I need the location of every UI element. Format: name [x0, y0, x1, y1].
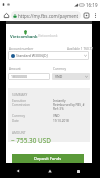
staticText: SUMMARY — [12, 93, 28, 97]
button[interactable]: Deposit Funds — [12, 154, 84, 163]
button[interactable]: VND — [52, 73, 90, 80]
staticText: Vietcombank — [38, 34, 58, 38]
staticText: 16:19 — [86, 2, 98, 8]
staticText: Commission — [12, 103, 30, 107]
button[interactable]: Recents — [72, 163, 85, 178]
staticText: https://my.fbs.com/payment — [18, 13, 79, 19]
staticText: Ref: 3% — [53, 107, 64, 111]
staticText: 18000000 — [11, 74, 28, 79]
staticText: VND — [53, 114, 60, 118]
button[interactable]: Standard W3006JDJ — [8, 51, 89, 60]
button[interactable]: Home — [43, 163, 56, 178]
staticText: VND — [55, 74, 63, 79]
staticText: Instantly — [53, 99, 66, 103]
button[interactable]: Tabs — [82, 11, 91, 20]
staticText: 19.10.2018 — [53, 119, 69, 123]
staticText: Date — [12, 119, 19, 123]
staticText: ~ 755.30 USD — [11, 136, 51, 145]
staticText: Account number — [9, 47, 34, 51]
button[interactable]: https://my.fbs.com/payment — [11, 11, 81, 20]
button[interactable]: Back — [11, 163, 24, 178]
staticText: Currency — [53, 67, 67, 71]
staticText: Standard W3006JDJ — [16, 53, 48, 58]
staticText: Deposit Funds — [34, 156, 62, 161]
staticText: Currency — [12, 114, 26, 118]
staticText: Vietcombank — [10, 34, 38, 40]
button[interactable]: 18000000 — [8, 73, 50, 80]
staticText: Available 1 760.77 — [67, 47, 94, 51]
staticText: Reimbursed by FBS, # — [53, 103, 85, 107]
staticText: AMOUNT — [12, 131, 26, 135]
button[interactable]: More options — [91, 11, 99, 19]
staticText: Amount — [9, 67, 21, 71]
button[interactable]: Home — [2, 11, 11, 20]
staticText: Execution — [12, 99, 27, 103]
